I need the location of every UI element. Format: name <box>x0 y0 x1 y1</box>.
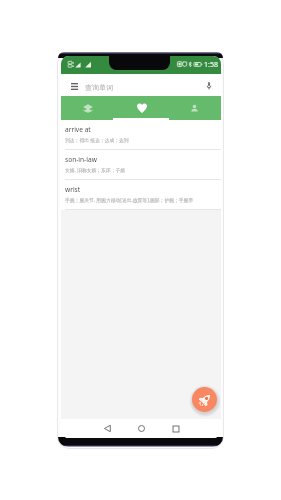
button[interactable]: wrist <box>61 180 221 210</box>
button[interactable]: son-in-law <box>61 150 221 180</box>
button[interactable]: Recents <box>168 421 183 436</box>
staticText: 女婿, 旧称女婿；东床；子婿 <box>65 167 126 174</box>
staticText: son-in-law <box>65 155 97 164</box>
staticText: 到达；得出 抵达；达成；达到 <box>65 137 129 144</box>
staticText: 查询单词 <box>85 83 113 92</box>
button[interactable]: arrive at <box>61 120 221 150</box>
button[interactable]: Voice search <box>202 78 216 92</box>
staticText: 手腕；腕关节, 用腕力移动[送出,放置等],腕部；护腕；手腕带 <box>65 197 194 204</box>
button[interactable]: Home <box>134 421 149 436</box>
button[interactable]: Back <box>100 421 115 436</box>
button[interactable]: Start study <box>192 387 217 412</box>
button[interactable]: Menu <box>67 79 81 93</box>
button[interactable]: Word books <box>61 96 115 120</box>
staticText: 1:58 <box>204 60 218 70</box>
staticText: arrive at <box>65 125 91 134</box>
button[interactable]: Favourites <box>115 96 168 120</box>
staticText: wrist <box>65 185 81 194</box>
button[interactable]: Profile <box>168 96 221 120</box>
